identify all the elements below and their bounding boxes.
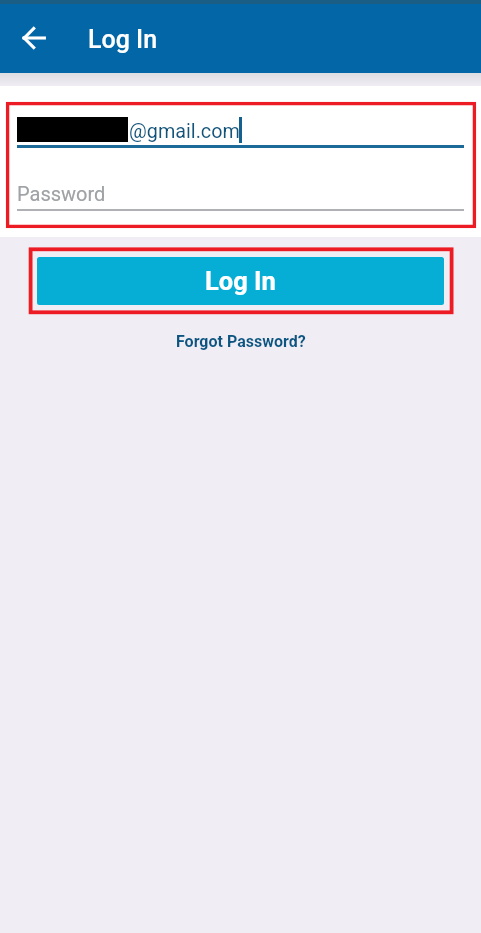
button[interactable]: Password	[16, 182, 463, 212]
staticText: Log In	[205, 266, 276, 296]
button[interactable]: Log In	[37, 257, 444, 305]
staticText: Log In	[88, 25, 158, 54]
staticText: Forgot Password?	[176, 332, 306, 351]
button[interactable]: @gmail.com	[17, 108, 464, 147]
staticText: @gmail.com	[129, 120, 240, 143]
button[interactable]: Back	[10, 14, 58, 62]
button[interactable]: Forgot Password?	[168, 327, 314, 356]
staticText: Password	[17, 182, 106, 205]
